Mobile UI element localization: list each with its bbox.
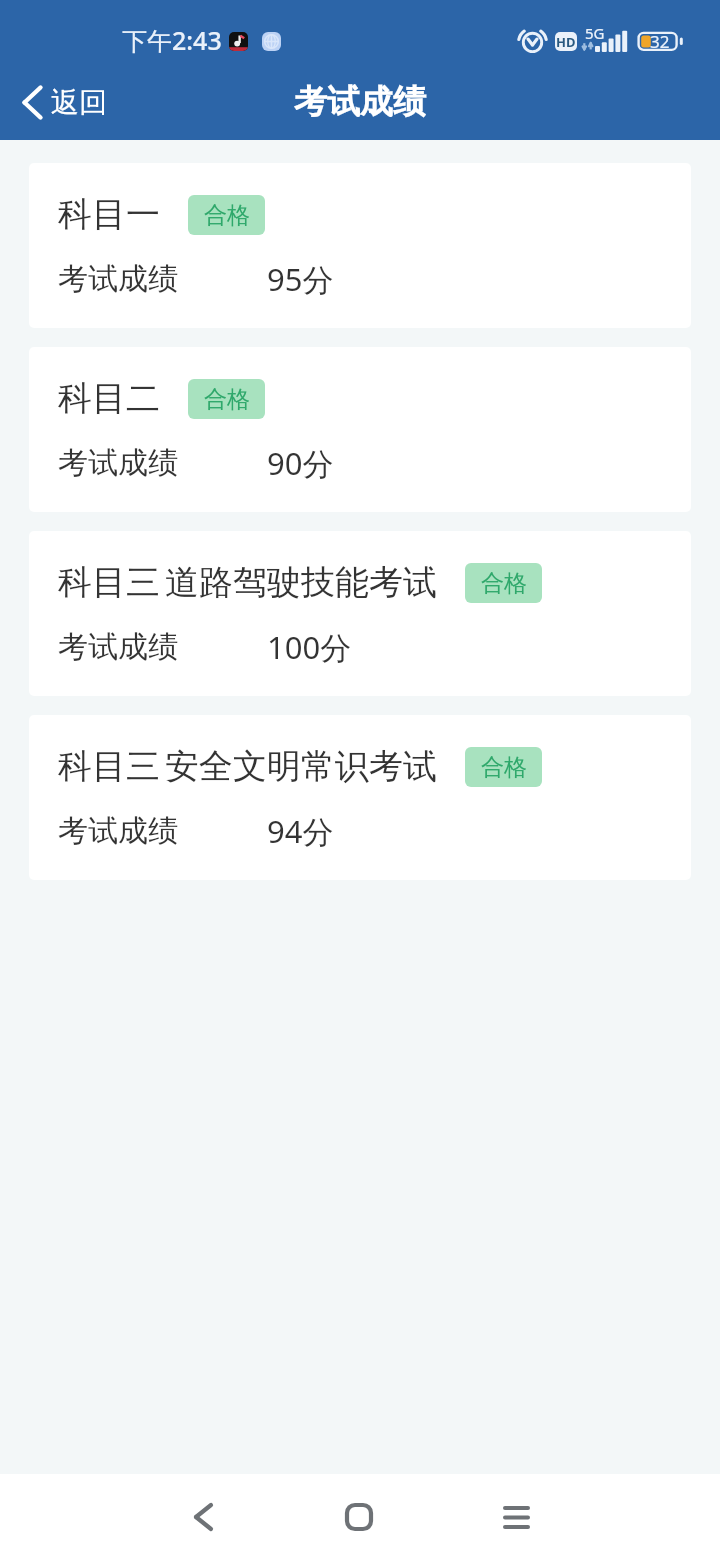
button[interactable]: 科目二 (29, 347, 691, 512)
staticText: 95分 (267, 258, 334, 300)
staticText: 合格 (481, 569, 527, 598)
button[interactable]: Home (315, 1474, 403, 1560)
button[interactable]: 科目三 (29, 531, 691, 696)
staticText: HD (556, 33, 576, 51)
staticText: 科目一 (58, 193, 160, 236)
staticText: 100分 (267, 626, 352, 668)
staticText: 考试成绩 (58, 260, 178, 298)
staticText: 科目三 (58, 745, 160, 788)
staticText: 安全文明常识考试 (165, 745, 437, 788)
staticText: 合格 (204, 201, 250, 230)
staticText: 科目二 (58, 377, 160, 420)
staticText: 道路驾驶技能考试 (165, 561, 437, 604)
staticText: 考试成绩 (58, 628, 178, 666)
staticText: 合格 (481, 753, 527, 782)
staticText: 考试成绩 (58, 444, 178, 482)
button[interactable]: 科目三 (29, 715, 691, 880)
staticText: 32 (650, 30, 670, 53)
staticText: 返回 (51, 85, 107, 120)
button[interactable]: 返回 (10, 76, 121, 129)
staticText: 考试成绩 (294, 81, 426, 123)
staticText: 下午2:43 (122, 23, 222, 57)
button[interactable]: Back (159, 1474, 247, 1560)
staticText: 94分 (267, 810, 334, 852)
button[interactable]: 科目一 (29, 163, 691, 328)
staticText: 科目三 (58, 561, 160, 604)
staticText: 考试成绩 (58, 812, 178, 850)
staticText: 合格 (204, 385, 250, 414)
button[interactable]: Recent apps (472, 1474, 560, 1560)
staticText: 90分 (267, 442, 334, 484)
staticText: 5G (585, 23, 605, 43)
